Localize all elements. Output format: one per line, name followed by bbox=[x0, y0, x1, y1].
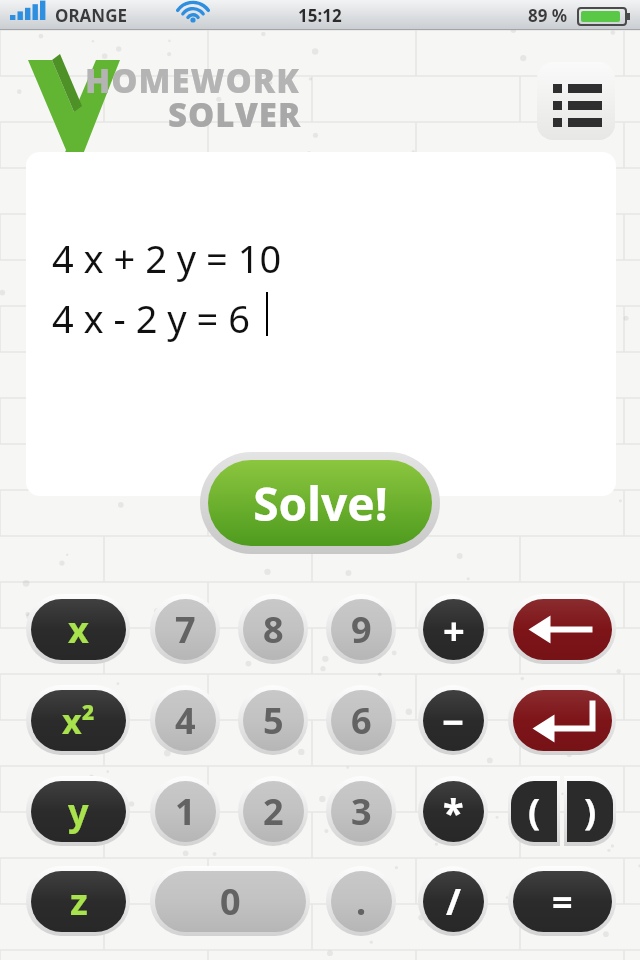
staticText: Solve! bbox=[253, 472, 388, 535]
button[interactable]: 8 bbox=[238, 594, 308, 664]
button[interactable]: + bbox=[418, 594, 488, 664]
staticText: 4 x + 2 y = 10 bbox=[52, 232, 282, 284]
staticText: x² bbox=[62, 698, 95, 744]
staticText: = bbox=[552, 877, 573, 926]
staticText: 7 bbox=[175, 605, 196, 654]
button[interactable]: z bbox=[26, 866, 130, 936]
staticText: z bbox=[70, 877, 88, 926]
button[interactable]: x² bbox=[26, 685, 130, 755]
staticText: * bbox=[443, 786, 464, 838]
button[interactable]: 9 bbox=[326, 594, 396, 664]
button[interactable]: 3 bbox=[326, 776, 396, 846]
staticText: 4 x - 2 y = 6 bbox=[52, 292, 250, 344]
staticText: 1 bbox=[175, 787, 196, 836]
button[interactable]: Menu bbox=[537, 62, 615, 140]
button[interactable]: − bbox=[418, 685, 488, 755]
staticText: 4 bbox=[175, 696, 196, 745]
button[interactable]: 2 bbox=[238, 776, 308, 846]
button[interactable]: y bbox=[26, 776, 130, 846]
button[interactable]: Close parenthesis bbox=[564, 776, 616, 846]
staticText: ORANGE bbox=[55, 4, 128, 27]
button[interactable]: Open parenthesis bbox=[508, 776, 560, 846]
button[interactable]: . bbox=[326, 866, 396, 936]
button[interactable]: 1 bbox=[150, 776, 220, 846]
staticText: 9 bbox=[351, 605, 372, 654]
staticText: / bbox=[446, 877, 461, 926]
staticText: 15:12 bbox=[298, 4, 342, 27]
staticText: ) bbox=[584, 787, 597, 836]
staticText: 2 bbox=[263, 787, 284, 836]
staticText: . bbox=[356, 877, 367, 926]
button[interactable]: = bbox=[508, 866, 616, 936]
button[interactable]: 4 bbox=[150, 685, 220, 755]
staticText: SOLVER bbox=[168, 92, 302, 137]
button[interactable]: Enter bbox=[508, 685, 616, 755]
staticText: 6 bbox=[351, 696, 372, 745]
staticText: + bbox=[443, 604, 465, 656]
staticText: − bbox=[442, 695, 465, 747]
button[interactable]: 6 bbox=[326, 685, 396, 755]
button[interactable]: Backspace bbox=[508, 594, 616, 664]
staticText: x bbox=[68, 605, 89, 654]
staticText: 89 % bbox=[528, 4, 568, 27]
button[interactable]: x bbox=[26, 594, 130, 664]
button[interactable]: * bbox=[418, 776, 488, 846]
staticText: 3 bbox=[351, 787, 372, 836]
staticText: 5 bbox=[263, 696, 284, 745]
button[interactable]: 0 bbox=[150, 866, 310, 936]
button[interactable]: Solve! bbox=[200, 452, 440, 554]
button[interactable]: 4 x + 2 y = 10 bbox=[26, 152, 616, 496]
button[interactable]: / bbox=[418, 866, 488, 936]
staticText: 0 bbox=[220, 877, 241, 926]
staticText: HOMEWORK bbox=[85, 58, 300, 103]
staticText: ( bbox=[528, 787, 541, 836]
staticText: y bbox=[68, 787, 89, 836]
staticText: 8 bbox=[263, 605, 284, 654]
button[interactable]: 5 bbox=[238, 685, 308, 755]
button[interactable]: 7 bbox=[150, 594, 220, 664]
